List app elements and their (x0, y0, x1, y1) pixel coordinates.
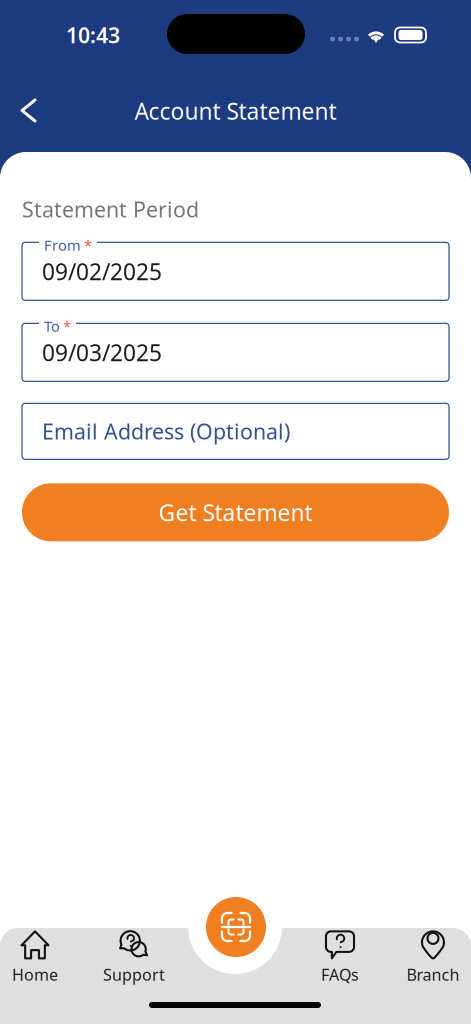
button[interactable]: Branch (390, 933, 471, 983)
staticText: * (84, 235, 92, 255)
staticText: Email Address (Optional) (42, 417, 290, 445)
button[interactable]: Get Statement (22, 483, 449, 541)
button[interactable]: Scan (206, 897, 266, 957)
staticText: To (44, 316, 60, 336)
staticText: Statement Period (22, 195, 199, 223)
button[interactable]: FAQs (297, 933, 383, 983)
staticText: 09/02/2025 (42, 256, 162, 286)
staticText: 10:43 (66, 21, 120, 49)
button[interactable]: Home (0, 933, 78, 983)
button[interactable]: Support (91, 933, 177, 983)
staticText: Account Statement (134, 96, 336, 126)
staticText: FAQs (321, 964, 359, 985)
staticText: Branch (406, 964, 459, 985)
staticText: 09/03/2025 (42, 337, 162, 367)
staticText: * (63, 316, 71, 336)
staticText: Get Statement (158, 497, 312, 527)
staticText: Home (12, 964, 58, 985)
button[interactable]: Back (4, 85, 53, 136)
staticText: Support (103, 964, 165, 985)
staticText: From (44, 235, 81, 255)
